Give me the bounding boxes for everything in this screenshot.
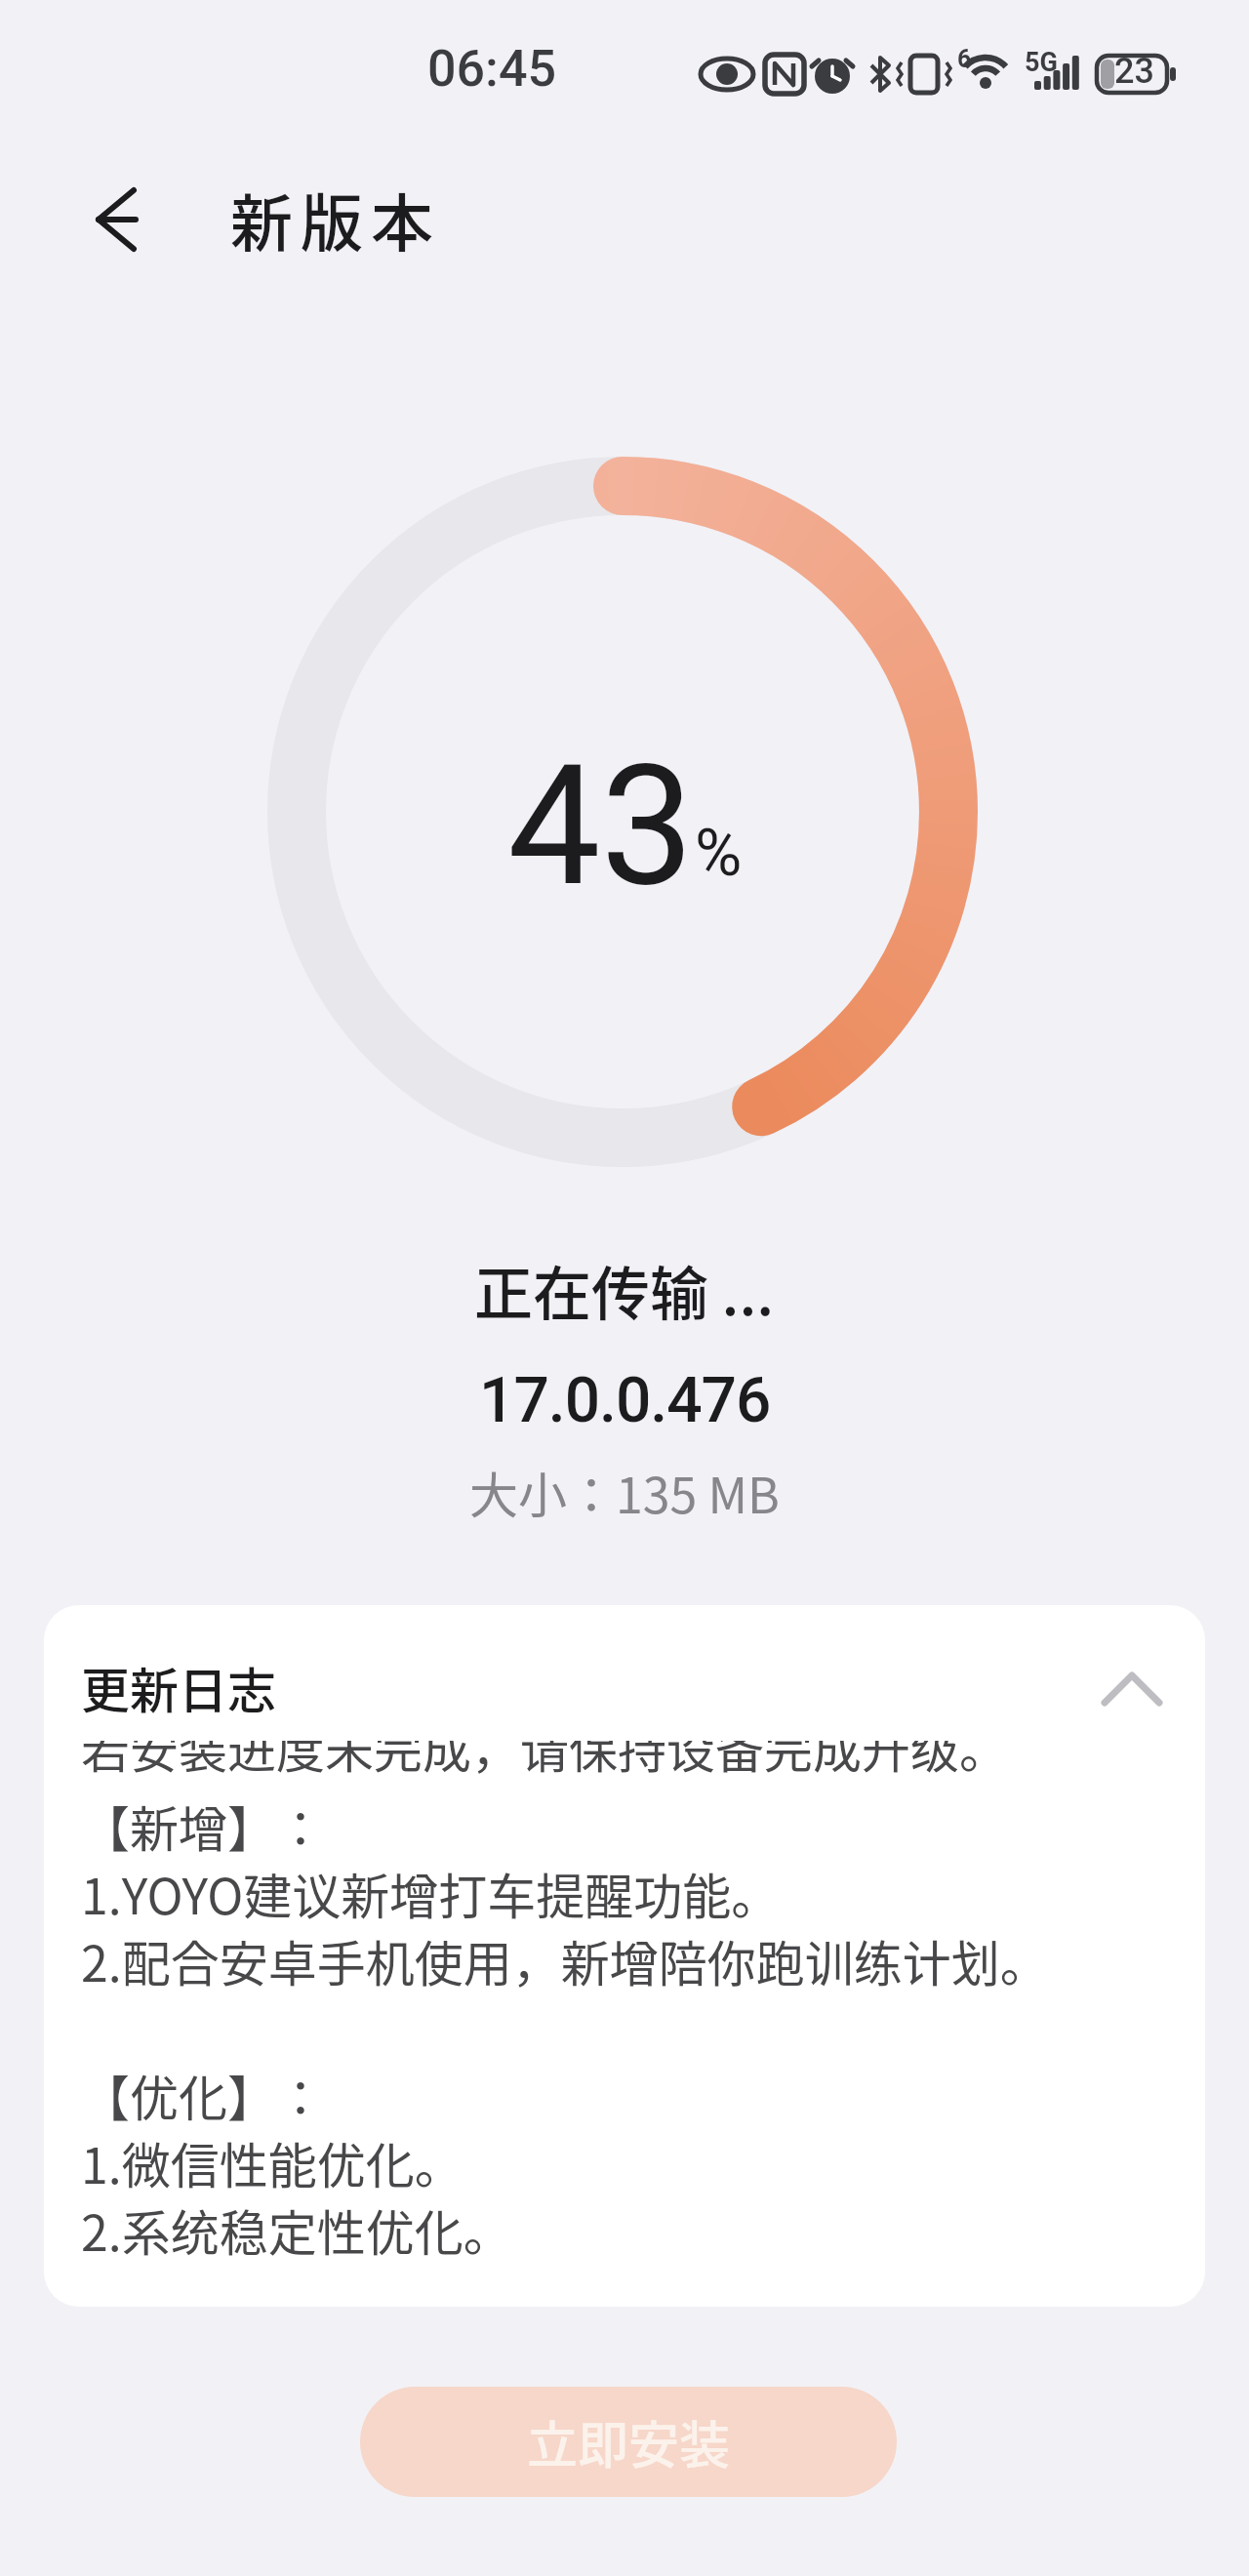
staticText: 新版本 (230, 174, 441, 264)
staticText: 06:45 (427, 39, 557, 99)
staticText: 立即安装 (527, 2405, 731, 2478)
staticText: 43 (507, 729, 695, 923)
staticText: 【新增】： 1.YOYO建议新增打车提醒功能。 2.配合安卓手机使用，新增陪你跑… (81, 1791, 1049, 2266)
button[interactable]: 更新日志 (44, 1605, 1205, 2307)
staticText: 大小：135 MB (469, 1457, 780, 1527)
staticText: 若安装进度未完成，请保持设备完成升级。 (81, 1741, 1008, 1782)
button[interactable] (68, 171, 166, 268)
staticText: % (695, 816, 743, 891)
button[interactable]: 立即安装 (360, 2387, 897, 2497)
staticText: 5G (1025, 47, 1058, 78)
staticText: 17.0.0.476 (479, 1364, 771, 1437)
staticText: 6 (957, 45, 972, 73)
staticText: 正在传输 ... (474, 1247, 775, 1332)
staticText: 23 (1114, 51, 1154, 92)
staticText: 更新日志 (81, 1652, 276, 1722)
